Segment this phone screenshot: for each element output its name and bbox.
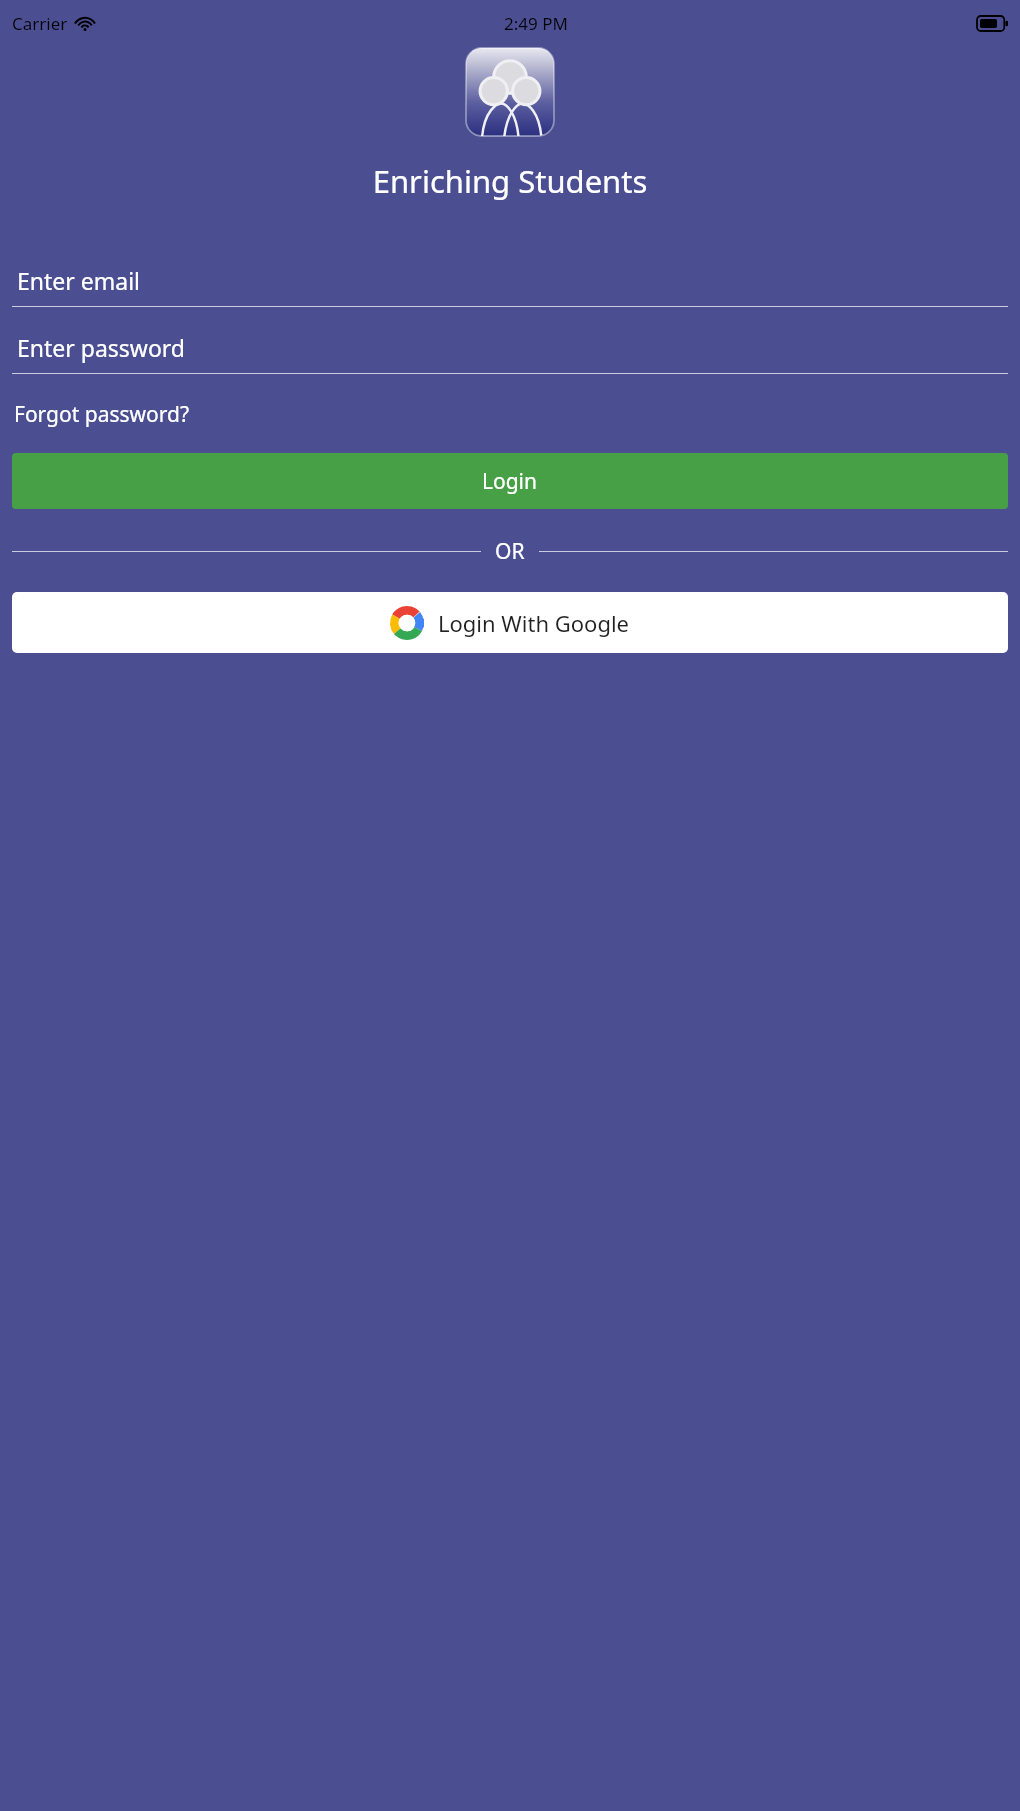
staticText: Login <box>482 467 538 496</box>
other: Wi-Fi signal <box>75 13 95 33</box>
button[interactable]: Enter email <box>12 254 1008 307</box>
staticText: 2:49 PM <box>504 12 568 35</box>
staticText: Enter password <box>17 332 186 363</box>
staticText: Enter email <box>17 265 141 296</box>
staticText: Login With Google <box>438 608 630 638</box>
staticText: OR <box>495 537 525 566</box>
other: Battery <box>977 16 1008 31</box>
other: Enriching Students logo <box>466 48 554 136</box>
button[interactable]: Forgot password? <box>12 394 192 435</box>
button[interactable]: Google <box>12 592 1008 653</box>
other: Google <box>390 606 424 640</box>
button[interactable]: Login <box>12 453 1008 509</box>
staticText: Enriching Students <box>0 160 1020 202</box>
button[interactable]: Enter password <box>12 321 1008 374</box>
staticText: Carrier <box>12 12 68 35</box>
staticText: Forgot password? <box>14 400 190 429</box>
